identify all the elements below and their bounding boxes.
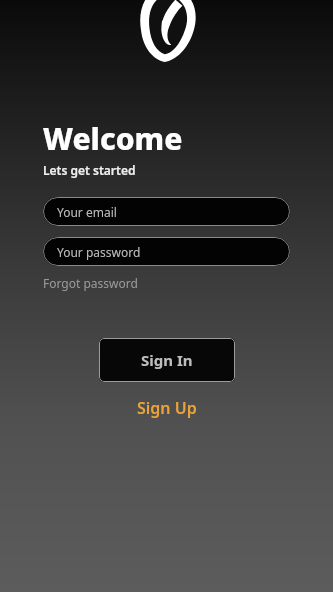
staticText: Your email (57, 204, 117, 220)
staticText: Welcome (43, 118, 183, 159)
staticText: Sign In (141, 350, 193, 370)
button[interactable]: Sign In (99, 338, 235, 382)
button[interactable]: Sign Up (125, 393, 209, 423)
button[interactable]: Your password (43, 237, 290, 266)
other: App logo (132, 0, 202, 62)
staticText: Your password (57, 244, 141, 260)
staticText: Forgot password (43, 275, 138, 291)
staticText: Sign Up (137, 397, 197, 419)
staticText: Lets get started (43, 162, 136, 178)
button[interactable]: Forgot password (43, 272, 138, 294)
button[interactable]: Your email (43, 197, 290, 226)
